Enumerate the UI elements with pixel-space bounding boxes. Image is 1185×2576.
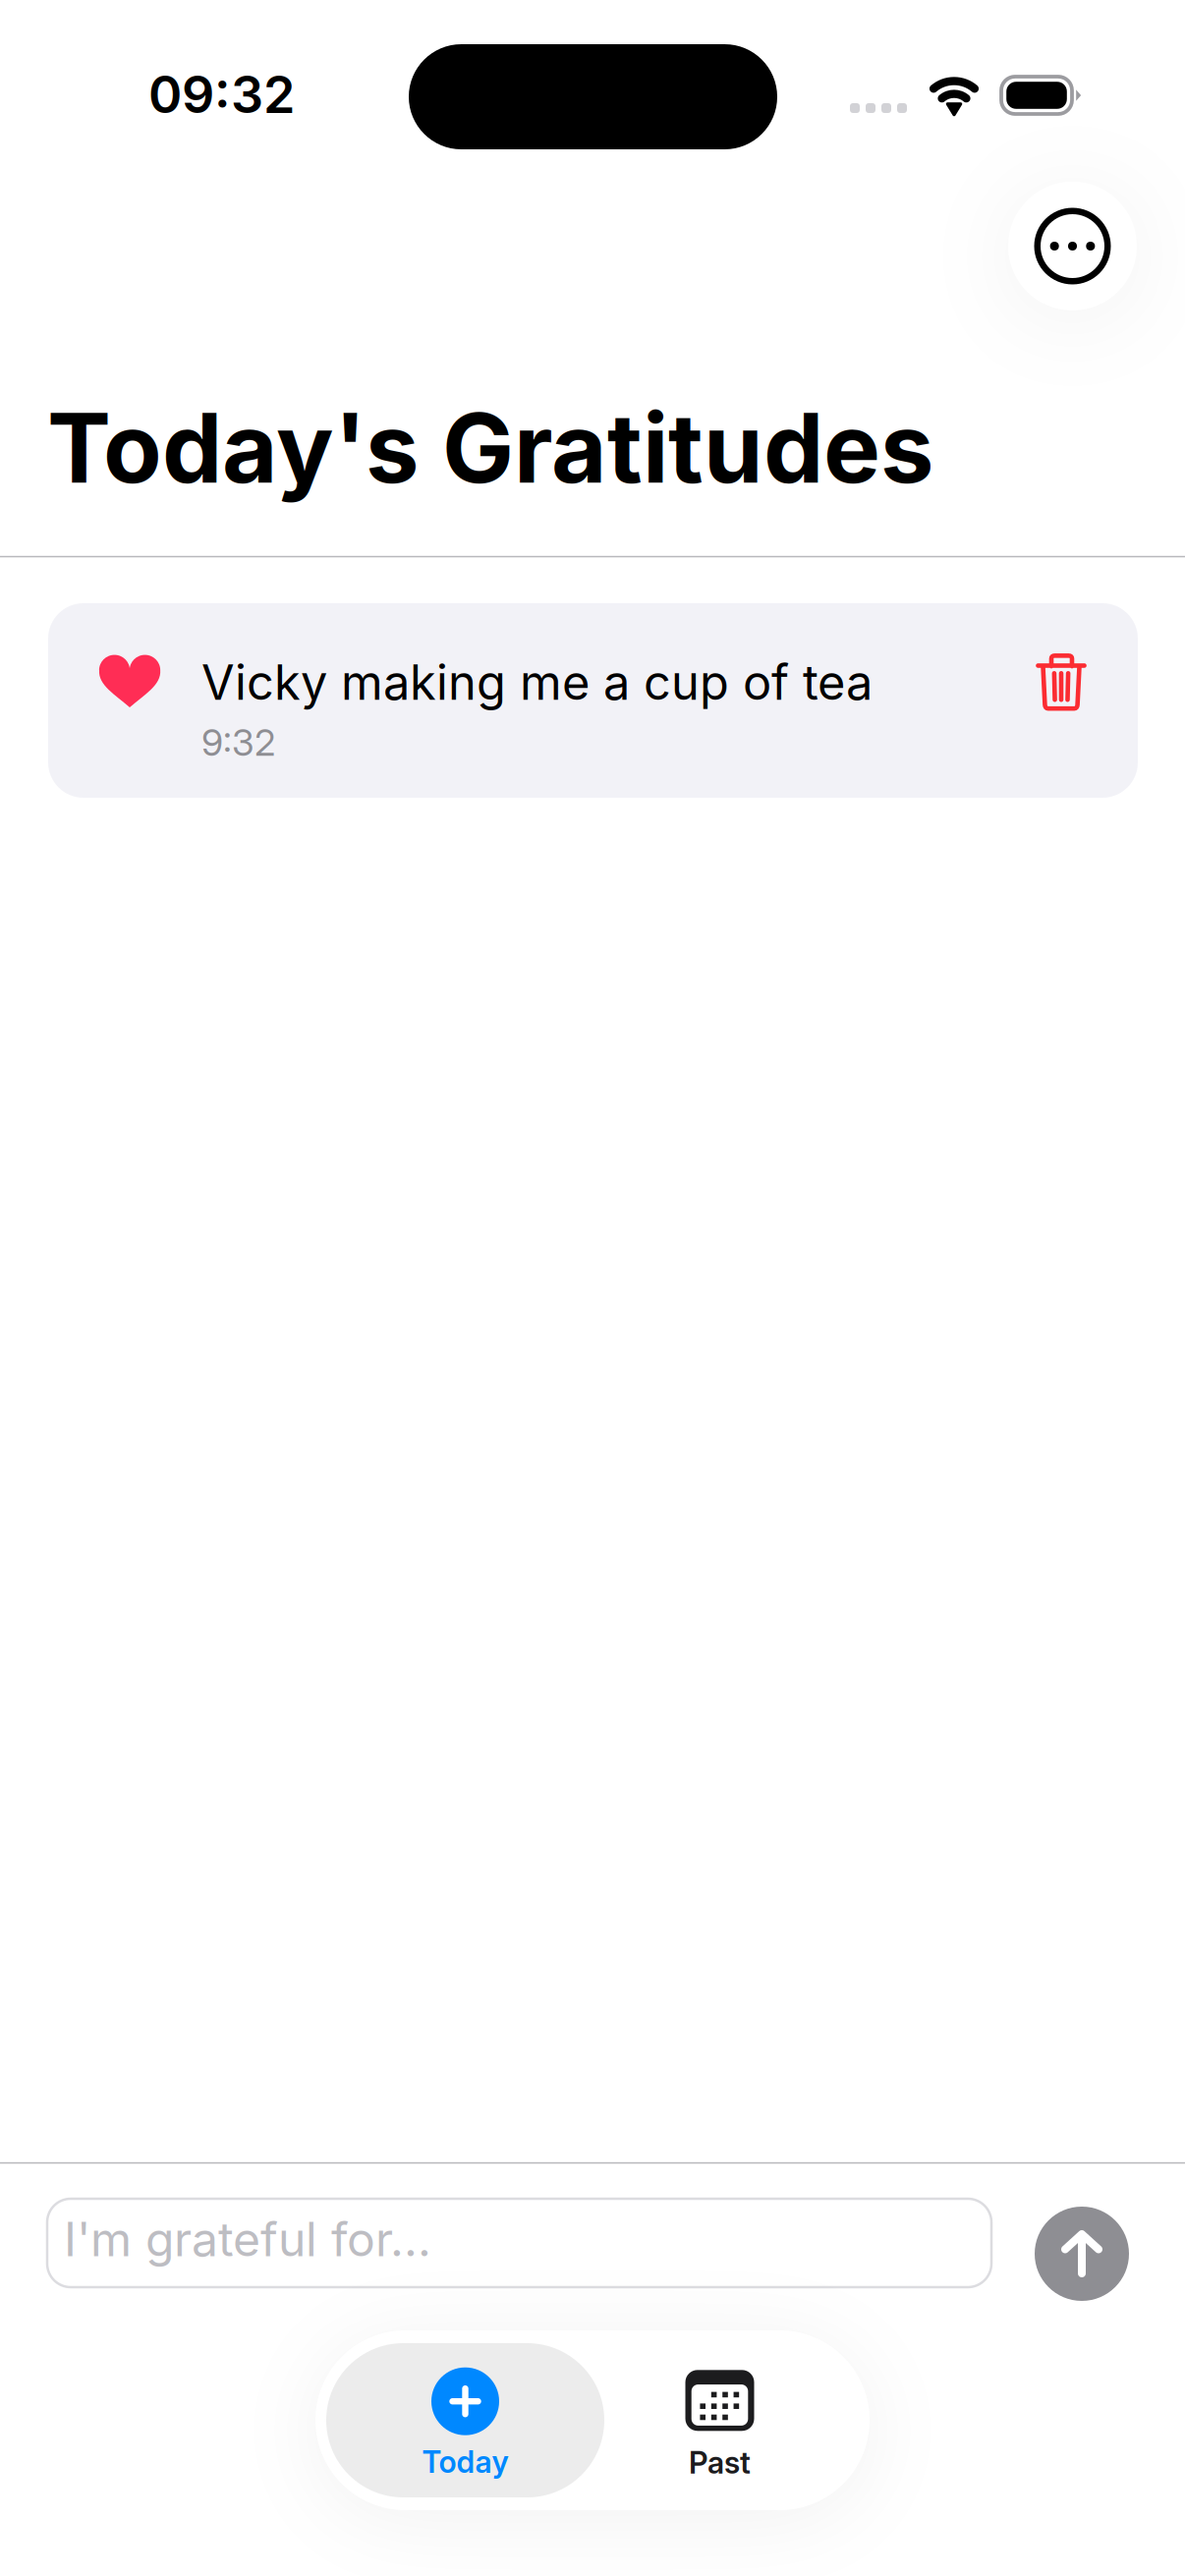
button[interactable]: More options <box>1008 182 1137 310</box>
button[interactable]: Delete entry <box>1016 637 1106 727</box>
staticText: 09:32 <box>148 63 295 125</box>
staticText: Today <box>422 2444 508 2480</box>
staticText: 9:32 <box>201 720 275 765</box>
staticText: I'm grateful for... <box>64 2211 431 2268</box>
button[interactable]: Send <box>1035 2207 1129 2301</box>
staticText: Past <box>689 2444 751 2481</box>
button[interactable]: Today <box>326 2343 604 2497</box>
staticText: Vicky making me a cup of tea <box>201 653 873 711</box>
button[interactable]: Past <box>604 2343 835 2497</box>
staticText: Today's Gratitudes <box>47 390 934 506</box>
button[interactable]: I'm grateful for... <box>47 2199 991 2287</box>
